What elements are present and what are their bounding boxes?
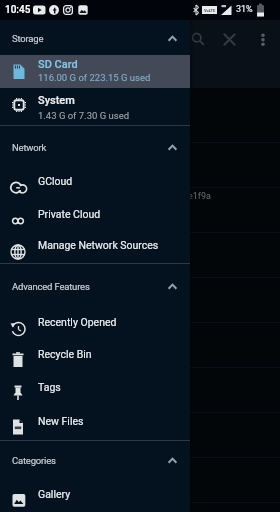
button[interactable] bbox=[256, 30, 270, 50]
staticText: 10:45 bbox=[5, 4, 31, 16]
staticText: 116.00 G of 223.15 G used bbox=[38, 72, 151, 83]
staticText: 31% bbox=[236, 4, 253, 15]
staticText: GCloud bbox=[38, 175, 73, 187]
staticText: Manage Network Sources bbox=[38, 239, 159, 251]
button[interactable]: SD Card bbox=[0, 55, 190, 88]
staticText: Tags bbox=[38, 381, 61, 393]
button[interactable]: Recently Opened bbox=[0, 306, 190, 338]
staticText: Categories bbox=[12, 455, 56, 466]
button[interactable]: Storage bbox=[0, 27, 190, 49]
staticText: Recently Opened bbox=[38, 316, 117, 328]
button[interactable]: Manage Network Sources bbox=[0, 229, 190, 261]
staticText: Recycle Bin bbox=[38, 348, 92, 360]
button[interactable]: GCloud bbox=[0, 165, 190, 197]
button[interactable]: Gallery bbox=[0, 478, 190, 510]
staticText: e1f9a bbox=[188, 191, 211, 202]
staticText: Advanced Features bbox=[12, 281, 90, 292]
button[interactable]: Tags bbox=[0, 371, 190, 403]
button[interactable]: Private Cloud bbox=[0, 198, 190, 230]
staticText: SD Card bbox=[38, 58, 78, 71]
button[interactable]: Network bbox=[0, 136, 190, 158]
button[interactable]: Categories bbox=[0, 449, 190, 471]
staticText: Gallery bbox=[38, 488, 71, 500]
staticText: Private Cloud bbox=[38, 208, 101, 220]
button[interactable] bbox=[224, 34, 235, 45]
staticText: 1.43 G of 7.30 G used bbox=[38, 110, 130, 121]
button[interactable]: New Files bbox=[0, 405, 190, 437]
staticText: New Files bbox=[38, 415, 84, 427]
staticText: Network bbox=[12, 142, 47, 153]
button[interactable]: Recycle Bin bbox=[0, 338, 190, 370]
button[interactable] bbox=[189, 29, 207, 47]
staticText: VoLTE bbox=[204, 8, 216, 13]
button[interactable]: Advanced Features bbox=[0, 275, 190, 297]
staticText: Storage bbox=[12, 33, 44, 44]
staticText: System bbox=[38, 94, 75, 107]
button[interactable]: System bbox=[0, 88, 190, 125]
